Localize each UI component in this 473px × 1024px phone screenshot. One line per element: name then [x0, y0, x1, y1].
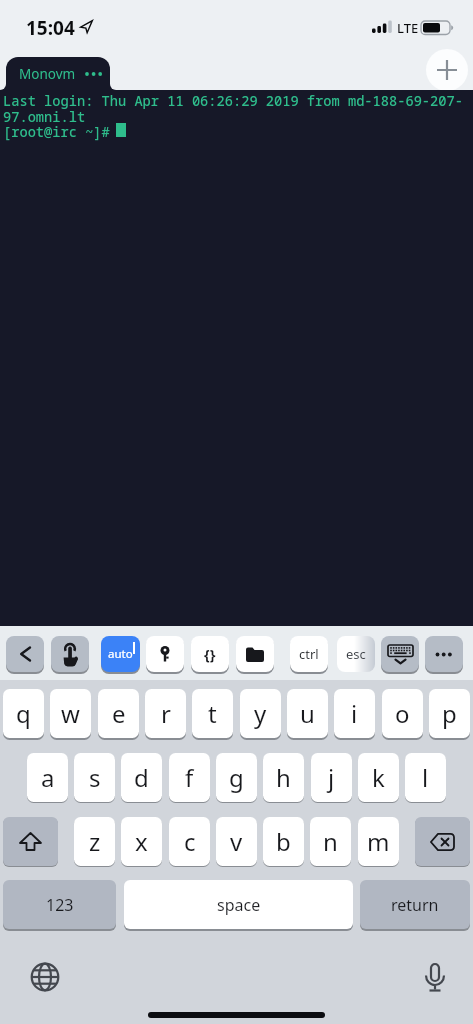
staticText: l	[422, 761, 429, 794]
button[interactable]: y	[240, 689, 281, 738]
button[interactable]: v	[216, 817, 257, 866]
staticText: Last login: Thu Apr 11 06:26:29 2019 fro…	[3, 91, 463, 110]
button[interactable]: {}	[191, 636, 229, 672]
button[interactable]: d	[121, 753, 162, 802]
staticText: x	[135, 825, 148, 858]
staticText: r	[161, 697, 171, 730]
button[interactable]: esc	[337, 636, 375, 672]
button[interactable]: h	[263, 753, 304, 802]
staticText: v	[230, 825, 243, 858]
button[interactable]: Monovm	[6, 57, 110, 90]
button[interactable]: ctrl	[290, 636, 328, 672]
staticText: w	[61, 697, 80, 730]
button[interactable]: b	[263, 817, 304, 866]
button[interactable]: e	[98, 689, 139, 738]
staticText: esc	[346, 645, 366, 663]
button[interactable]: o	[382, 689, 423, 738]
staticText: h	[276, 761, 291, 794]
staticText: m	[367, 825, 390, 858]
staticText: b	[276, 825, 291, 858]
button[interactable]: q	[3, 689, 44, 738]
button[interactable]: auto	[101, 636, 140, 672]
button[interactable]: c	[169, 817, 210, 866]
button[interactable]: g	[216, 753, 257, 802]
button[interactable]	[146, 636, 184, 672]
button[interactable]: l	[405, 753, 446, 802]
staticText: return	[391, 894, 439, 916]
button[interactable]	[51, 636, 89, 672]
button[interactable]: t	[192, 689, 233, 738]
button[interactable]: a	[27, 753, 68, 802]
staticText: 15:04	[26, 15, 75, 41]
button[interactable]: m	[358, 817, 399, 866]
staticText: 123	[46, 894, 74, 916]
staticText: s	[89, 761, 101, 794]
staticText: p	[442, 697, 457, 730]
button[interactable]: z	[74, 817, 115, 866]
staticText: space	[217, 894, 261, 916]
staticText: y	[254, 697, 267, 730]
staticText: {}	[204, 644, 216, 664]
staticText: ctrl	[299, 645, 319, 663]
button[interactable]: n	[310, 817, 351, 866]
staticText: a	[41, 761, 55, 794]
button[interactable]: u	[287, 689, 328, 738]
button[interactable]: p	[429, 689, 470, 738]
staticText: g	[229, 761, 244, 794]
button[interactable]	[6, 636, 44, 672]
staticText: auto	[108, 646, 133, 662]
button[interactable]	[236, 636, 274, 672]
staticText: n	[323, 825, 338, 858]
staticText: u	[300, 697, 315, 730]
button[interactable]	[3, 817, 58, 866]
button[interactable]	[0, 90, 473, 626]
staticText: q	[16, 697, 31, 730]
staticText: i	[351, 697, 358, 730]
button[interactable]: f	[169, 753, 210, 802]
button[interactable]: k	[358, 753, 399, 802]
button[interactable]	[415, 817, 470, 866]
staticText: [root@irc ~]#	[3, 122, 110, 141]
staticText: o	[395, 697, 410, 730]
staticText: t	[208, 697, 217, 730]
button[interactable]	[426, 49, 468, 91]
staticText: z	[89, 825, 101, 858]
button[interactable]: space	[124, 880, 353, 929]
staticText: c	[184, 825, 196, 858]
button[interactable]: i	[334, 689, 375, 738]
staticText: f	[185, 761, 194, 794]
button[interactable]: return	[360, 880, 470, 929]
staticText: 97.omni.lt	[3, 107, 86, 126]
staticText: LTE	[397, 19, 419, 37]
staticText: Monovm	[19, 65, 76, 83]
button[interactable]	[381, 636, 419, 672]
button[interactable]: r	[145, 689, 186, 738]
button[interactable]: s	[74, 753, 115, 802]
button[interactable]: w	[50, 689, 91, 738]
button[interactable]: 123	[3, 880, 116, 929]
staticText: j	[328, 761, 335, 794]
staticText: d	[134, 761, 149, 794]
staticText: k	[372, 761, 385, 794]
button[interactable]	[418, 961, 452, 995]
staticText: e	[112, 697, 126, 730]
button[interactable]: x	[121, 817, 162, 866]
button[interactable]	[425, 636, 463, 672]
button[interactable]	[28, 960, 62, 994]
button[interactable]: j	[311, 753, 352, 802]
